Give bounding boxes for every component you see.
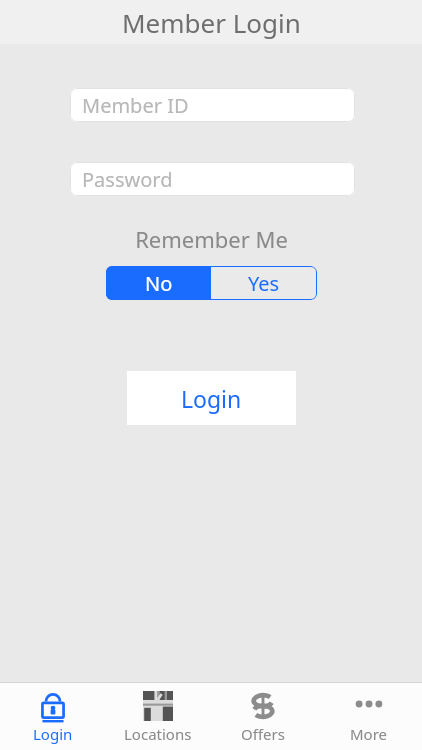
staticText: More <box>350 724 388 744</box>
button[interactable]: More <box>316 683 422 750</box>
staticText: Login <box>33 724 73 744</box>
staticText: Yes <box>248 270 280 297</box>
button[interactable]: Yes <box>211 266 317 300</box>
button[interactable]: Locations <box>105 683 210 750</box>
staticText: Offers <box>241 724 285 744</box>
button[interactable]: No <box>106 266 211 300</box>
button[interactable]: Login <box>0 683 105 750</box>
staticText: Member Login <box>122 5 301 40</box>
button[interactable]: Member ID <box>70 88 355 122</box>
staticText: Password <box>82 166 173 193</box>
staticText: No <box>145 270 173 297</box>
staticText: Member ID <box>82 92 189 119</box>
staticText: Remember Me <box>135 224 288 252</box>
staticText: Login <box>181 383 242 414</box>
button[interactable]: Password <box>70 162 355 196</box>
button[interactable]: Login <box>127 371 296 425</box>
button[interactable]: Offers <box>210 683 316 750</box>
staticText: Locations <box>124 724 192 744</box>
